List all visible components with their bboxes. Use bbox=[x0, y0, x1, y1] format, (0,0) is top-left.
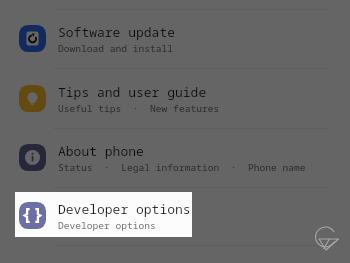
staticText: Useful tips · New features bbox=[58, 102, 220, 115]
staticText: Developer options bbox=[58, 200, 191, 218]
other: About phone bbox=[19, 144, 46, 171]
staticText: Developer options bbox=[58, 200, 191, 218]
other: Developer options bbox=[19, 202, 46, 229]
other: Tips and user guide bbox=[19, 85, 46, 112]
staticText: Developer options bbox=[58, 219, 156, 232]
staticText: About phone bbox=[58, 142, 144, 160]
button[interactable]: Tips and user guide bbox=[0, 70, 350, 126]
button[interactable]: About phone bbox=[0, 129, 350, 185]
button[interactable]: Software update bbox=[0, 10, 350, 66]
other: Software update bbox=[19, 25, 46, 52]
staticText: Developer options bbox=[58, 219, 156, 232]
staticText: Download and install bbox=[58, 42, 174, 55]
other: Developer options bbox=[19, 202, 46, 229]
staticText: Tips and user guide bbox=[58, 83, 207, 101]
button[interactable]: Developer options bbox=[15, 192, 192, 237]
staticText: Software update bbox=[58, 23, 176, 41]
button[interactable]: Developer options bbox=[0, 187, 350, 243]
staticText: Status · Legal information · Phone name bbox=[58, 161, 306, 174]
